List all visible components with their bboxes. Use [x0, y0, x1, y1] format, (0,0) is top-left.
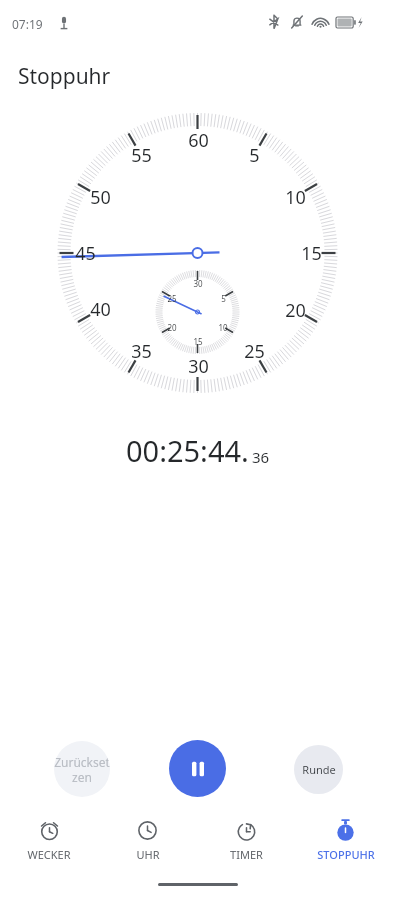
- staticText: 45: [75, 241, 96, 266]
- staticText: 00:25:44.: [126, 431, 249, 470]
- staticText: 10: [218, 322, 228, 333]
- button[interactable]: Zurücksetzen: [54, 741, 110, 797]
- staticText: 5: [249, 143, 260, 168]
- staticText: 15: [301, 241, 322, 266]
- staticText: Runde: [302, 762, 336, 777]
- staticText: 25: [167, 293, 177, 304]
- staticText: TIMER: [230, 847, 263, 862]
- staticText: 30: [188, 354, 209, 379]
- staticText: 30: [193, 278, 203, 289]
- staticText: 55: [131, 143, 152, 168]
- button[interactable]: Pause: [169, 740, 226, 797]
- button[interactable]: WECKER: [0, 815, 98, 862]
- staticText: 10: [285, 185, 306, 210]
- staticText: 07:19: [12, 16, 43, 32]
- staticText: 36: [252, 447, 270, 467]
- staticText: 5: [221, 293, 226, 304]
- staticText: 20: [285, 298, 306, 323]
- staticText: STOPPUHR: [317, 847, 375, 862]
- button[interactable]: TIMER: [197, 815, 296, 862]
- staticText: 60: [188, 128, 209, 153]
- staticText: Stoppuhr: [18, 62, 111, 91]
- staticText: 35: [131, 339, 152, 364]
- staticText: 40: [90, 297, 111, 322]
- button[interactable]: UHR: [98, 815, 197, 862]
- staticText: Zurücksetzen: [54, 754, 110, 785]
- staticText: 50: [90, 185, 111, 210]
- button[interactable]: STOPPUHR: [296, 815, 395, 862]
- button[interactable]: Runde: [294, 745, 343, 794]
- staticText: UHR: [136, 847, 160, 862]
- staticText: WECKER: [27, 847, 71, 862]
- staticText: 20: [167, 322, 177, 333]
- staticText: 15: [193, 336, 203, 347]
- staticText: 25: [244, 339, 265, 364]
